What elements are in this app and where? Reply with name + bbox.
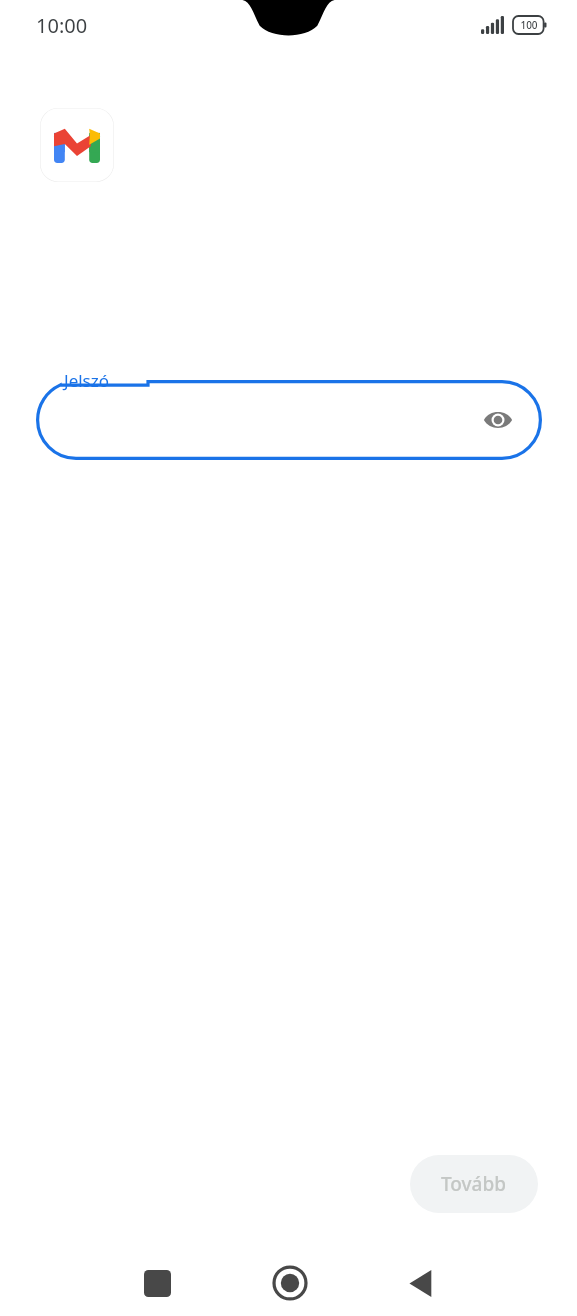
button[interactable]: Legutóbbiak (130, 1256, 184, 1310)
button[interactable]: Jelszó (36, 380, 542, 460)
button[interactable]: Jelszó megjelenítése (476, 398, 520, 442)
button[interactable]: Kezdőképernyő (263, 1256, 317, 1310)
button[interactable]: Vissza (393, 1256, 447, 1310)
staticText: Jelszó (64, 369, 110, 392)
button[interactable]: Tovább (410, 1155, 538, 1213)
staticText: 100 (520, 18, 538, 32)
staticText: Tovább (441, 1171, 507, 1197)
staticText: 10:00 (36, 12, 88, 39)
